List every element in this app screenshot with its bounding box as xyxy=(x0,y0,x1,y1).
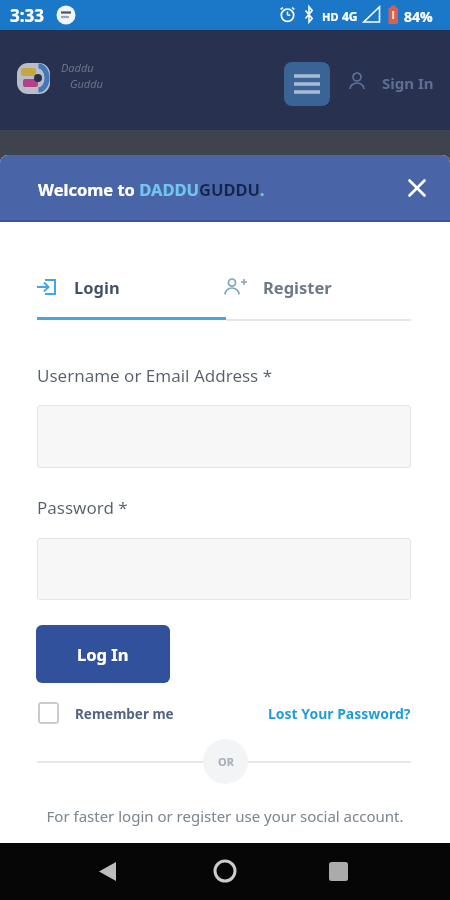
staticText: Login xyxy=(74,276,120,298)
staticText: Daddu xyxy=(61,60,94,75)
button[interactable] xyxy=(37,405,411,468)
staticText: 3:33 xyxy=(10,4,44,27)
button[interactable] xyxy=(284,62,330,106)
button[interactable] xyxy=(318,849,358,893)
staticText: 4G xyxy=(342,8,358,24)
staticText: Guddu xyxy=(70,76,103,91)
staticText: HD xyxy=(322,9,339,24)
staticText: Username or Email Address * xyxy=(37,364,273,387)
button[interactable]: Login xyxy=(30,267,226,317)
button[interactable]: Log In xyxy=(36,625,170,683)
staticText: For faster login or register use your so… xyxy=(0,806,450,826)
button[interactable] xyxy=(403,174,431,202)
button[interactable]: Sign In xyxy=(340,64,440,104)
staticText: Register xyxy=(263,276,332,298)
button[interactable] xyxy=(205,849,245,893)
staticText: Sign In xyxy=(382,73,434,93)
button[interactable] xyxy=(88,849,126,893)
staticText: OR xyxy=(218,754,234,769)
staticText: Remember me xyxy=(75,705,174,723)
staticText: Log In xyxy=(77,643,129,665)
button[interactable] xyxy=(38,702,59,724)
staticText: Password * xyxy=(37,496,128,519)
button[interactable] xyxy=(37,538,411,600)
button[interactable]: Register xyxy=(217,267,411,317)
button[interactable]: Lost Your Password? xyxy=(225,700,411,726)
staticText: 84% xyxy=(404,7,433,26)
staticText: Lost Your Password? xyxy=(268,704,411,723)
staticText: Welcome to DADDUGUDDU. xyxy=(38,178,265,200)
